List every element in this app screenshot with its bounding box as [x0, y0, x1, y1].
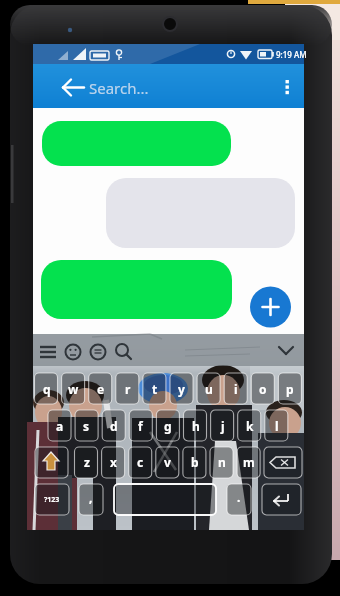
button[interactable]: q — [35, 373, 58, 404]
button[interactable]: h — [184, 410, 207, 441]
staticText: v — [164, 454, 171, 470]
staticText: r — [125, 381, 131, 397]
staticText: 9:19 AM — [276, 49, 307, 60]
staticText: w — [68, 381, 79, 397]
button[interactable] — [264, 447, 302, 478]
button[interactable] — [114, 484, 216, 515]
button[interactable]: b — [183, 446, 206, 477]
button[interactable]: f — [129, 410, 152, 441]
button[interactable]: n — [210, 446, 233, 477]
button[interactable]: e — [89, 373, 112, 404]
button[interactable]: a — [48, 410, 71, 441]
button[interactable]: v — [156, 446, 179, 477]
staticText: y — [178, 381, 185, 397]
staticText: g — [164, 418, 172, 434]
staticText: u — [205, 381, 213, 397]
staticText: e — [97, 381, 105, 397]
button[interactable]: . — [227, 481, 251, 512]
staticText: j — [221, 418, 225, 434]
button[interactable] — [250, 287, 291, 328]
staticText: i — [234, 381, 238, 397]
staticText: , — [89, 489, 93, 505]
button[interactable]: d — [102, 410, 125, 441]
button[interactable] — [35, 447, 68, 478]
staticText: n — [218, 454, 226, 470]
button[interactable]: y — [170, 373, 193, 404]
staticText: q — [43, 381, 51, 397]
staticText: t — [152, 381, 158, 397]
button[interactable]: Search... — [89, 78, 149, 98]
staticText: f — [138, 418, 143, 434]
staticText: z — [84, 454, 90, 470]
button[interactable]: g — [156, 410, 179, 441]
staticText: d — [110, 418, 118, 434]
staticText: o — [259, 381, 267, 397]
button[interactable]: s — [75, 410, 98, 441]
button[interactable]: k — [238, 410, 261, 441]
button[interactable]: l — [265, 410, 288, 441]
button[interactable]: o — [251, 373, 274, 404]
staticText: x — [110, 454, 117, 470]
button[interactable]: u — [197, 373, 220, 404]
button[interactable]: i — [224, 373, 247, 404]
staticText: a — [56, 418, 64, 434]
staticText: c — [137, 454, 144, 470]
staticText: h — [192, 418, 200, 434]
button[interactable]: p — [278, 373, 301, 404]
staticText: m — [243, 454, 255, 470]
staticText: s — [83, 418, 90, 434]
staticText: . — [237, 489, 241, 505]
button[interactable]: j — [211, 410, 234, 441]
staticText: b — [191, 454, 199, 470]
staticText: ?123 — [44, 495, 60, 505]
button[interactable]: r — [116, 373, 139, 404]
button[interactable]: ?123 — [35, 484, 69, 515]
button[interactable]: m — [237, 446, 260, 477]
button[interactable]: c — [129, 446, 152, 477]
button[interactable]: w — [62, 373, 85, 404]
button[interactable]: , — [79, 481, 103, 512]
button[interactable]: z — [75, 446, 98, 477]
staticText: k — [246, 418, 254, 434]
button[interactable]: x — [102, 446, 125, 477]
button[interactable] — [58, 72, 90, 104]
button[interactable]: t — [143, 373, 166, 404]
staticText: p — [286, 381, 294, 397]
button[interactable] — [262, 484, 301, 515]
staticText: l — [275, 418, 279, 434]
